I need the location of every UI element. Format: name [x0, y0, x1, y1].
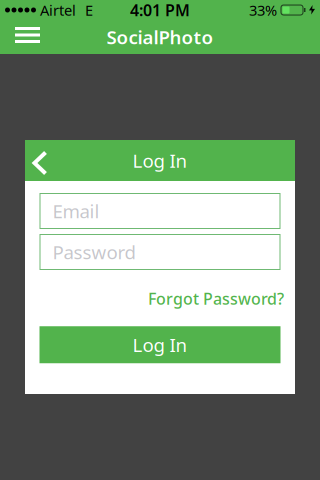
staticText: 4:01 PM: [130, 0, 190, 21]
button[interactable]: Back: [25, 146, 48, 175]
staticText: E: [85, 0, 93, 20]
staticText: Airtel: [40, 0, 76, 20]
staticText: 33%: [249, 0, 277, 20]
button[interactable]: Log In: [39, 326, 280, 363]
staticText: SocialPhoto: [106, 25, 213, 49]
staticText: Password: [52, 240, 135, 264]
staticText: Forgot Password?: [148, 288, 284, 309]
staticText: Email: [52, 199, 99, 223]
staticText: Log In: [132, 148, 187, 173]
button[interactable]: Menu: [0, 20, 40, 54]
secureTextField[interactable]: Password: [52, 240, 280, 264]
staticText: Email: [52, 199, 99, 223]
staticText: Password: [52, 240, 135, 264]
button[interactable]: Forgot Password?: [148, 288, 284, 309]
textField[interactable]: Email: [52, 199, 280, 223]
staticText: Log In: [132, 332, 187, 357]
